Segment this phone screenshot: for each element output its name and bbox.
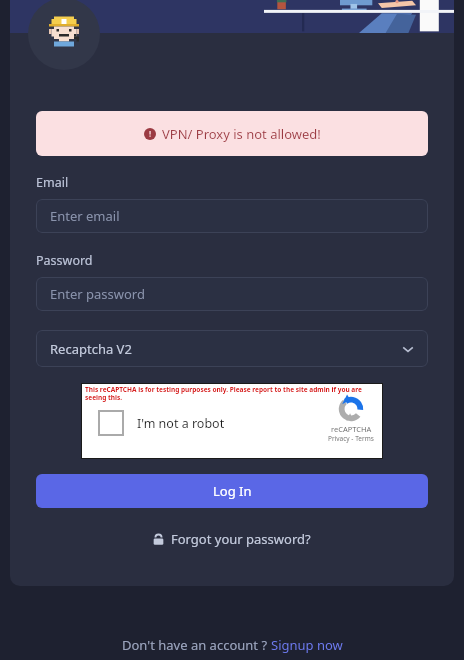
staticText: This reCAPTCHA is for testing purposes o… [85, 385, 379, 402]
button[interactable]: VPN/ Proxy is not allowed! [36, 111, 428, 156]
button[interactable]: Recaptcha V2 [36, 330, 428, 367]
staticText: reCAPTCHA [331, 424, 372, 434]
button[interactable]: Enter email [36, 199, 428, 233]
staticText: Recaptcha V2 [50, 340, 132, 358]
staticText: Password [36, 252, 93, 269]
button[interactable]: Signup now [271, 636, 343, 654]
staticText: Enter password [50, 285, 145, 303]
staticText: Enter email [50, 207, 120, 225]
button[interactable]: Enter password [36, 277, 428, 311]
staticText: I'm not a robot [137, 415, 225, 432]
button[interactable]: Profile avatar [28, 0, 100, 70]
staticText: Signup now [271, 636, 343, 654]
button[interactable]: Forgot your password? [149, 526, 315, 552]
button[interactable]: Log In [36, 474, 428, 508]
staticText: Don't have an account ? [122, 636, 271, 654]
staticText: Forgot your password? [171, 530, 311, 548]
staticText: Email [36, 174, 69, 191]
button[interactable]: reCAPTCHA I'm not a robot [82, 384, 382, 458]
staticText: Log In [213, 482, 252, 500]
staticText: Privacy - Terms [328, 434, 374, 443]
staticText: VPN/ Proxy is not allowed! [162, 125, 321, 143]
